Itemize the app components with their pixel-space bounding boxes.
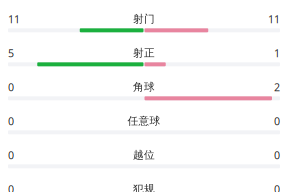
staticText: 射正 <box>133 46 155 59</box>
staticText: 犯规 <box>133 182 155 192</box>
staticText: 0 <box>8 80 14 94</box>
staticText: 角球 <box>133 80 155 93</box>
staticText: 11 <box>8 12 20 26</box>
staticText: 射门 <box>133 12 155 25</box>
staticText: 任意球 <box>127 114 160 127</box>
staticText: 2 <box>274 80 280 94</box>
staticText: 0 <box>8 182 14 192</box>
staticText: 0 <box>8 148 14 162</box>
staticText: 越位 <box>133 148 155 161</box>
staticText: 0 <box>274 148 280 162</box>
staticText: 0 <box>8 114 14 128</box>
staticText: 0 <box>274 114 280 128</box>
staticText: 1 <box>274 46 280 60</box>
staticText: 0 <box>274 182 280 192</box>
staticText: 5 <box>8 46 14 60</box>
staticText: 11 <box>268 12 280 26</box>
